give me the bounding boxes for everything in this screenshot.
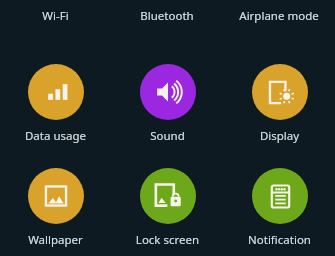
button[interactable]: Sound bbox=[112, 64, 223, 144]
button[interactable]: Data usage bbox=[28, 64, 84, 120]
staticText: Data usage bbox=[0, 128, 111, 144]
staticText: Wi-Fi bbox=[0, 8, 111, 24]
button[interactable]: Lock screen bbox=[140, 168, 196, 224]
button[interactable]: Display bbox=[224, 64, 335, 144]
button[interactable]: Display bbox=[252, 64, 308, 120]
button[interactable]: Wallpaper bbox=[0, 168, 111, 248]
staticText: Notification bbox=[224, 232, 335, 248]
staticText: Sound bbox=[112, 128, 223, 144]
button[interactable]: Sound bbox=[140, 64, 196, 120]
staticText: Bluetooth bbox=[111, 8, 223, 24]
button[interactable]: Airplane mode bbox=[223, 8, 335, 24]
button[interactable]: Data usage bbox=[0, 64, 111, 144]
staticText: Display bbox=[224, 128, 335, 144]
staticText: Airplane mode bbox=[223, 8, 335, 24]
button[interactable]: Lock screen bbox=[112, 168, 223, 248]
button[interactable]: Notification bbox=[224, 168, 335, 248]
button[interactable]: Notification bbox=[252, 168, 308, 224]
button[interactable]: Bluetooth bbox=[111, 8, 223, 24]
staticText: Wallpaper bbox=[0, 232, 111, 248]
button[interactable]: Wallpaper bbox=[28, 168, 84, 224]
staticText: Lock screen bbox=[112, 232, 223, 248]
button[interactable]: Wi-Fi bbox=[0, 8, 111, 24]
